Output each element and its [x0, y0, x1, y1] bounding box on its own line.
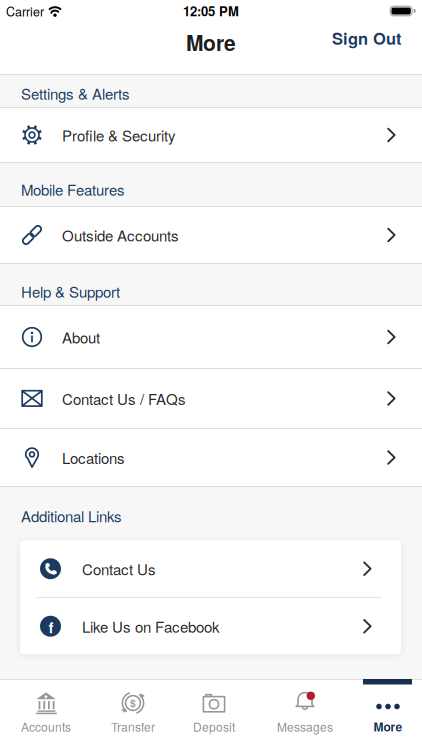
staticText: Like Us on Facebook	[82, 615, 220, 637]
staticText: Accounts	[21, 718, 71, 735]
staticText: About	[62, 326, 100, 348]
button[interactable]: More	[338, 691, 422, 735]
staticText: Carrier	[6, 2, 44, 20]
staticText: Transfer	[111, 718, 155, 735]
staticText: More	[373, 718, 402, 735]
staticText: f	[48, 616, 53, 638]
staticText: Deposit	[193, 718, 235, 735]
staticText: Locations	[62, 447, 125, 468]
button[interactable]: Locations	[0, 429, 422, 486]
staticText: Mobile Features	[21, 178, 125, 200]
staticText: Outside Accounts	[62, 224, 179, 246]
button[interactable]: About	[0, 306, 422, 368]
staticText: $	[130, 695, 136, 710]
button[interactable]: Outside Accounts	[0, 207, 422, 263]
staticText: 12:05 PM	[183, 2, 239, 20]
button[interactable]: $	[84, 691, 169, 735]
staticText: Help & Support	[21, 280, 120, 302]
staticText: Messages	[277, 718, 333, 735]
button[interactable]: Sign Out	[332, 26, 401, 50]
staticText: Contact Us	[82, 558, 156, 579]
button[interactable]: Profile & Security	[0, 108, 422, 162]
staticText: Additional Links	[21, 505, 122, 526]
button[interactable]: f	[20, 598, 401, 654]
staticText: Contact Us / FAQs	[62, 388, 186, 409]
button[interactable]: Messages	[253, 691, 338, 735]
staticText: Settings & Alerts	[21, 82, 130, 104]
button[interactable]: Accounts	[0, 691, 84, 735]
button[interactable]: Contact Us / FAQs	[0, 369, 422, 428]
button[interactable]: Deposit	[169, 691, 253, 735]
staticText: More	[186, 27, 236, 58]
staticText: Sign Out	[332, 26, 401, 50]
button[interactable]: Contact Us	[20, 540, 401, 597]
staticText: Profile & Security	[62, 124, 176, 146]
